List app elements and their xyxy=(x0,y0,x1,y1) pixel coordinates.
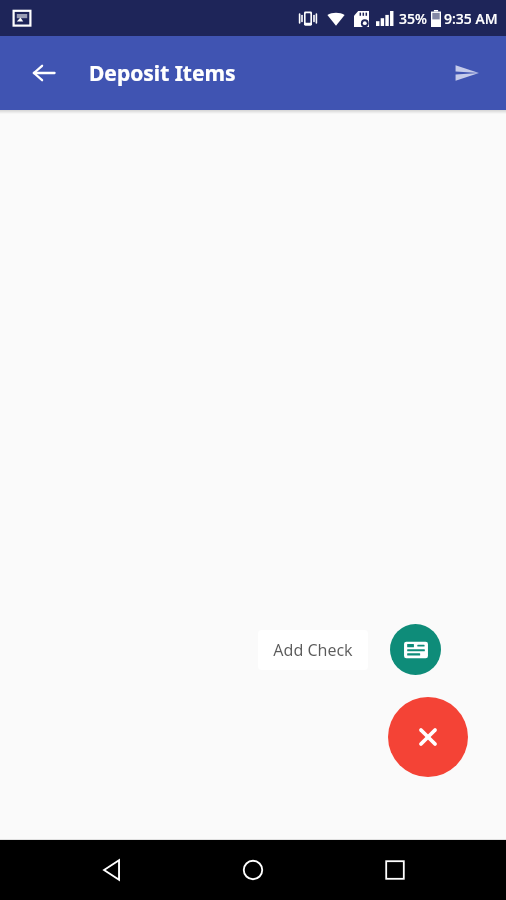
button[interactable]: Add Check xyxy=(258,630,368,670)
button[interactable]: Recent apps xyxy=(365,840,425,900)
staticText: Add Check xyxy=(273,639,353,661)
staticText: Deposit Items xyxy=(89,59,236,88)
button[interactable]: Back xyxy=(22,51,66,95)
staticText: 35% xyxy=(399,9,427,28)
button[interactable]: Add Check xyxy=(390,624,441,675)
button[interactable]: Send xyxy=(444,50,490,96)
button[interactable]: Close xyxy=(388,697,468,777)
staticText: 9:35 AM xyxy=(444,9,498,28)
button[interactable]: Home xyxy=(223,840,283,900)
button[interactable]: Back xyxy=(82,840,142,900)
